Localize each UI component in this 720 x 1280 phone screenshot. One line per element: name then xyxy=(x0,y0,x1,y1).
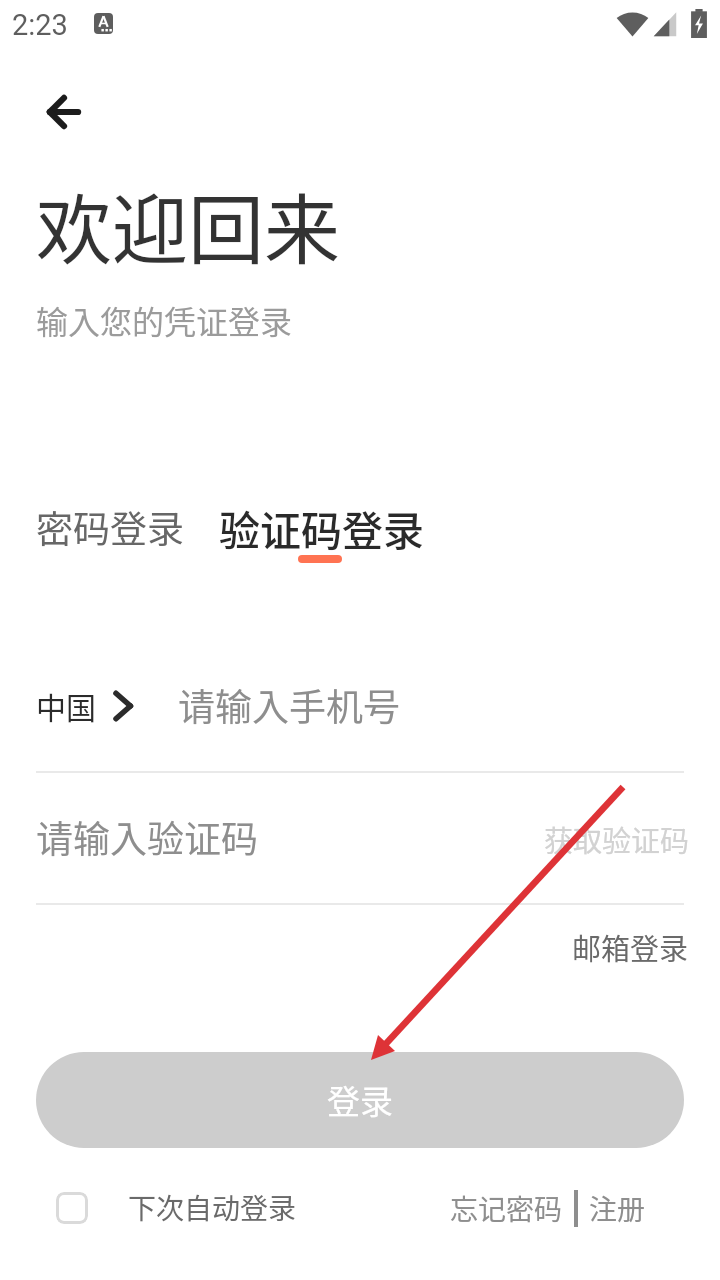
button[interactable]: Back xyxy=(28,76,99,147)
button[interactable]: 获取验证码 xyxy=(544,818,690,860)
staticText: 登录 xyxy=(327,1076,393,1124)
staticText: 欢迎回来 xyxy=(36,170,340,280)
button[interactable]: 注册 xyxy=(589,1188,646,1229)
staticText: 忘记密码 xyxy=(450,1188,563,1229)
staticText: 获取验证码 xyxy=(544,818,690,860)
staticText: 验证码登录 xyxy=(219,498,424,557)
staticText: 下次自动登录 xyxy=(128,1187,297,1228)
staticText: 输入您的凭证登录 xyxy=(36,297,293,343)
staticText: 邮箱登录 xyxy=(572,926,689,968)
staticText: 请输入验证码 xyxy=(36,810,258,864)
staticText: 中国 xyxy=(36,684,96,727)
staticText: 2:23 xyxy=(12,8,68,42)
button[interactable]: 邮箱登录 xyxy=(572,926,689,968)
button[interactable]: 验证码登录 xyxy=(219,498,424,565)
staticText: 请输入手机号 xyxy=(178,678,400,732)
button[interactable]: 忘记密码 xyxy=(450,1188,563,1229)
button[interactable]: 密码登录 xyxy=(36,500,184,554)
staticText: 注册 xyxy=(589,1188,646,1229)
button[interactable]: 登录 xyxy=(36,1052,684,1148)
button[interactable]: 下次自动登录 xyxy=(56,1187,297,1228)
button[interactable]: 中国 xyxy=(36,684,134,727)
